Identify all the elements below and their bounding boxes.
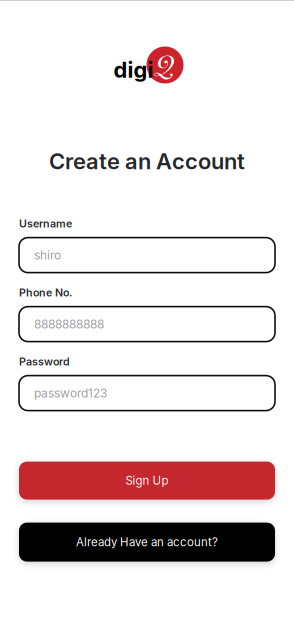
staticText: Sign Up	[125, 474, 168, 488]
button[interactable]: Already Have an account?	[19, 523, 275, 562]
staticText: Password	[19, 355, 70, 368]
staticText: Already Have an account?	[76, 535, 218, 549]
button[interactable]: Sign Up	[19, 462, 275, 500]
staticText: 8888888888	[34, 317, 104, 331]
staticText: Username	[19, 217, 72, 230]
staticText: Create an Account	[49, 148, 245, 175]
staticText: password123	[34, 386, 107, 400]
staticText: Q	[155, 47, 175, 81]
staticText: shiro	[34, 248, 61, 262]
staticText: digi	[113, 56, 153, 83]
staticText: Phone No.	[19, 286, 72, 299]
